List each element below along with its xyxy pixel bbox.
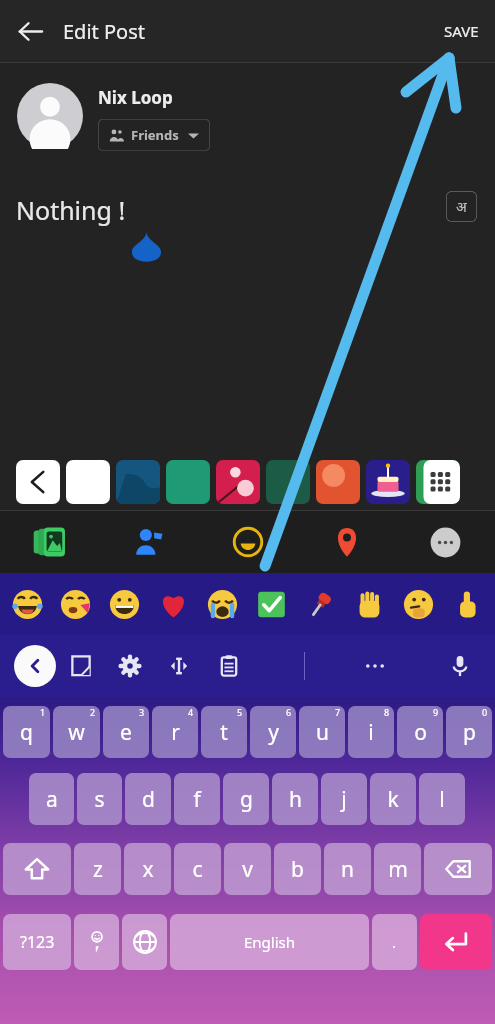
button[interactable]: Sticker xyxy=(416,460,460,504)
staticText: s xyxy=(94,785,105,814)
button[interactable]: Sticker xyxy=(66,460,110,504)
staticText: t xyxy=(220,718,228,747)
staticText: 0 xyxy=(482,706,488,718)
button[interactable]: Emoji xyxy=(345,573,394,635)
button[interactable]: Photo xyxy=(0,511,99,573)
staticText: x xyxy=(142,855,154,884)
button[interactable]: Emoji xyxy=(74,914,119,970)
button[interactable]: q xyxy=(3,706,50,758)
button[interactable]: b xyxy=(274,843,321,895)
button[interactable]: z xyxy=(74,843,121,895)
button[interactable]: Voice input xyxy=(435,635,485,697)
button[interactable]: o xyxy=(397,706,443,758)
staticText: Nothing ! xyxy=(16,193,126,227)
staticText: अ xyxy=(456,197,467,216)
button[interactable]: f xyxy=(174,773,220,825)
button[interactable]: Emoji xyxy=(149,573,198,635)
staticText: Nix Loop xyxy=(98,86,173,109)
staticText: 4 xyxy=(188,706,194,718)
staticText: 5 xyxy=(237,706,243,718)
button[interactable]: Change language xyxy=(122,914,167,970)
staticText: e xyxy=(120,718,132,747)
staticText: h xyxy=(289,785,302,814)
button[interactable]: Sticker xyxy=(16,460,60,504)
staticText: . xyxy=(392,932,397,952)
button[interactable]: Emoji xyxy=(198,573,247,635)
button[interactable]: Cursor control xyxy=(154,635,204,697)
button[interactable]: r xyxy=(152,706,198,758)
button[interactable]: Sticker xyxy=(116,460,160,504)
button[interactable]: Sticker xyxy=(316,460,360,504)
staticText: n xyxy=(341,855,354,884)
button[interactable]: More options xyxy=(350,635,400,697)
button[interactable]: Tag people xyxy=(99,511,198,573)
button[interactable]: . xyxy=(372,914,417,970)
button[interactable]: Emoji xyxy=(51,573,100,635)
button[interactable]: v xyxy=(224,843,271,895)
button[interactable]: SAVE xyxy=(436,11,487,51)
button[interactable]: t xyxy=(201,706,247,758)
button[interactable]: x xyxy=(124,843,171,895)
staticText: m xyxy=(388,855,408,884)
button[interactable]: Sticker xyxy=(56,635,105,697)
button[interactable]: Sticker xyxy=(166,460,210,504)
staticText: j xyxy=(341,785,347,814)
button[interactable]: Feeling xyxy=(198,511,297,573)
button[interactable]: Location xyxy=(297,511,396,573)
button[interactable]: Collapse keyboard xyxy=(14,645,56,687)
button[interactable]: e xyxy=(103,706,149,758)
staticText: 3 xyxy=(139,706,145,718)
button[interactable]: Back xyxy=(6,7,54,55)
button[interactable]: k xyxy=(370,773,416,825)
button[interactable]: s xyxy=(77,773,122,825)
button[interactable]: w xyxy=(53,706,100,758)
button[interactable]: d xyxy=(125,773,171,825)
button[interactable]: m xyxy=(374,843,421,895)
button[interactable]: Friends xyxy=(98,119,210,151)
button[interactable]: Change input script xyxy=(446,191,477,222)
staticText: k xyxy=(387,785,399,814)
button[interactable]: c xyxy=(174,843,221,895)
button[interactable]: u xyxy=(299,706,345,758)
button[interactable]: Emoji xyxy=(3,573,51,635)
button[interactable]: Sticker xyxy=(216,460,260,504)
staticText: w xyxy=(68,718,85,747)
button[interactable]: i xyxy=(348,706,394,758)
staticText: 6 xyxy=(286,706,292,718)
button[interactable]: Emoji xyxy=(296,573,345,635)
staticText: r xyxy=(171,718,180,747)
button[interactable]: ?123 xyxy=(3,914,71,970)
button[interactable]: Emoji xyxy=(394,573,443,635)
button[interactable]: a xyxy=(29,773,74,825)
staticText: 1 xyxy=(40,706,46,718)
staticText: 2 xyxy=(90,706,96,718)
staticText: c xyxy=(192,855,203,884)
button[interactable]: Settings xyxy=(105,635,154,697)
button[interactable]: More options xyxy=(396,511,495,573)
button[interactable]: Shift xyxy=(3,843,71,895)
button[interactable]: Backspace xyxy=(424,843,492,895)
staticText: ?123 xyxy=(20,931,55,953)
button[interactable]: Sticker xyxy=(366,460,410,504)
button[interactable]: Sticker xyxy=(266,460,310,504)
button[interactable]: l xyxy=(419,773,465,825)
staticText: z xyxy=(93,855,103,884)
button[interactable]: Clipboard xyxy=(204,635,254,697)
button[interactable]: j xyxy=(321,773,367,825)
button[interactable]: n xyxy=(324,843,371,895)
button[interactable]: h xyxy=(272,773,318,825)
staticText: 8 xyxy=(384,706,390,718)
button[interactable]: English xyxy=(170,914,369,970)
staticText: v xyxy=(242,855,253,884)
staticText: d xyxy=(142,785,155,814)
staticText: l xyxy=(439,785,445,814)
button[interactable]: Emoji xyxy=(443,573,492,635)
button[interactable]: Emoji xyxy=(100,573,149,635)
button[interactable]: y xyxy=(250,706,296,758)
staticText: u xyxy=(316,718,329,747)
staticText: Edit Post xyxy=(63,18,145,45)
button[interactable]: Emoji xyxy=(247,573,296,635)
button[interactable]: Enter xyxy=(420,914,492,970)
button[interactable]: p xyxy=(446,706,492,758)
button[interactable]: g xyxy=(223,773,269,825)
